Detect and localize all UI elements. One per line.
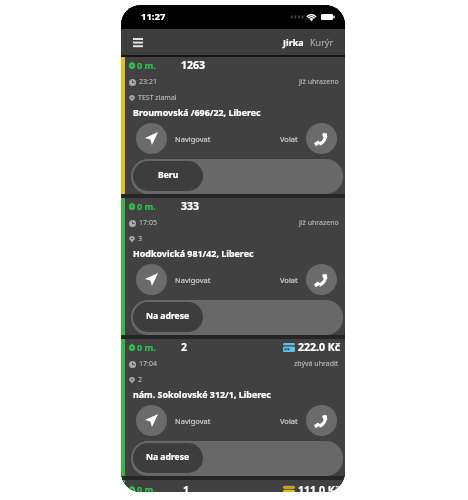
- staticText: 0 m.: [137, 483, 156, 492]
- staticText: Hodkovická 981/42, Liberec: [133, 247, 254, 259]
- staticText: již uhrazeno: [299, 77, 339, 87]
- staticText: nám. Sokolovské 312/1, Liberec: [133, 388, 271, 400]
- staticText: Navigovat: [175, 134, 211, 144]
- staticText: 11:27: [141, 10, 166, 23]
- staticText: 222.0 Kč: [298, 340, 341, 354]
- staticText: Na adrese: [146, 451, 190, 463]
- button[interactable]: Navigovat: [136, 123, 167, 154]
- staticText: Volat: [280, 275, 298, 285]
- staticText: Volat: [280, 416, 298, 426]
- button[interactable]: Navigovat: [136, 405, 167, 436]
- button[interactable]: Volat: [306, 123, 337, 154]
- staticText: Navigovat: [175, 416, 211, 426]
- button[interactable]: Navigovat: [136, 264, 167, 295]
- staticText: 0 m.: [137, 200, 156, 212]
- staticText: 17:05: [139, 218, 157, 228]
- staticText: 1: [183, 483, 190, 492]
- staticText: 333: [181, 199, 200, 213]
- staticText: 0 m.: [137, 341, 156, 353]
- button[interactable]: Na adrese: [131, 441, 343, 476]
- button[interactable]: Na adrese: [131, 300, 343, 335]
- staticText: Na adrese: [146, 310, 190, 322]
- staticText: 17:04: [139, 359, 157, 369]
- button[interactable]: Volat: [306, 405, 337, 436]
- staticText: TEST zlamal: [138, 93, 177, 103]
- staticText: 0 m.: [137, 59, 156, 71]
- button[interactable]: Jirka: [283, 36, 304, 48]
- staticText: 111.0 Kč: [298, 483, 341, 492]
- button[interactable]: Beru: [131, 159, 343, 194]
- staticText: Volat: [280, 134, 298, 144]
- staticText: 2: [138, 375, 143, 385]
- staticText: již uhrazeno: [299, 218, 339, 228]
- staticText: 1263: [181, 58, 206, 72]
- staticText: Beru: [158, 169, 179, 181]
- staticText: zbývá uhradit: [294, 359, 339, 369]
- staticText: Navigovat: [175, 275, 211, 285]
- staticText: 23:21: [139, 77, 157, 87]
- button[interactable]: Kurýr: [310, 36, 334, 48]
- staticText: 3: [138, 234, 143, 244]
- button[interactable]: Volat: [306, 264, 337, 295]
- staticText: 2: [181, 340, 188, 354]
- staticText: Broumovská /696/22, Liberec: [133, 106, 261, 118]
- button[interactable]: Menu: [126, 31, 149, 54]
